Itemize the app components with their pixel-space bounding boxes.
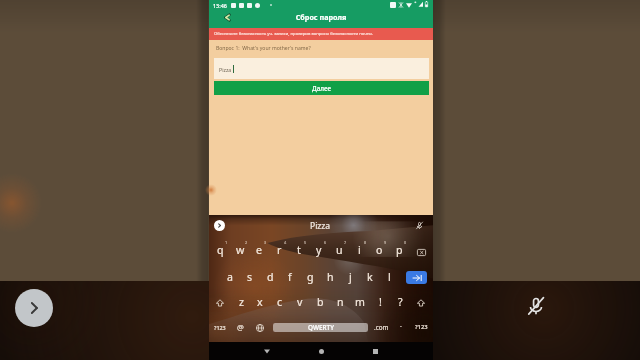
staticText: ? (398, 295, 403, 309)
staticText: 7 (344, 240, 347, 245)
staticText: j (349, 270, 352, 284)
button[interactable]: g (300, 264, 320, 289)
staticText: 3 (264, 240, 267, 245)
staticText: t (297, 243, 301, 257)
button[interactable]: ? (390, 289, 410, 314)
button[interactable]: m (350, 289, 370, 314)
staticText: y (316, 243, 322, 257)
staticText: v (297, 295, 303, 309)
button[interactable]: 5 (289, 237, 309, 262)
button[interactable]: Shift (209, 290, 230, 315)
button[interactable]: Expand suggestions (214, 220, 225, 231)
button[interactable]: a (220, 264, 240, 289)
staticText: 4 (284, 240, 287, 245)
staticText: 2 (245, 240, 248, 245)
staticText: n (337, 295, 344, 309)
button[interactable]: v (290, 289, 310, 314)
staticText: ?123 (214, 324, 226, 331)
button[interactable]: s (240, 264, 260, 289)
button[interactable]: 8 (349, 237, 369, 262)
staticText: u (336, 243, 343, 257)
staticText: Pizza (219, 66, 232, 73)
staticText: g (307, 270, 314, 284)
button[interactable]: z (231, 289, 251, 314)
button[interactable]: Caps lock (409, 290, 433, 315)
staticText: Вопрос 1: What's your mother's name? (216, 45, 311, 52)
staticText: · (400, 322, 402, 332)
staticText: QWERTY (308, 323, 334, 332)
button[interactable]: Recent apps (368, 344, 382, 358)
staticText: f (288, 270, 292, 284)
staticText: @ (237, 322, 244, 332)
button[interactable]: Backspace (408, 240, 434, 265)
button[interactable]: 2 (230, 237, 250, 262)
staticText: Обеспечьте безопасность уч. записи, пров… (214, 31, 373, 37)
button[interactable]: Pizza (296, 218, 344, 234)
button[interactable]: ?123 (210, 315, 230, 339)
button[interactable]: 3 (249, 237, 269, 262)
button[interactable]: Enter (406, 271, 427, 284)
staticText: m (355, 295, 365, 309)
button[interactable]: · (395, 315, 407, 339)
staticText: 8 (364, 240, 367, 245)
staticText: p (396, 243, 403, 257)
button[interactable]: ! (370, 289, 390, 314)
staticText: .com (374, 323, 389, 332)
staticText: k (367, 270, 373, 284)
staticText: c (277, 295, 283, 309)
button[interactable]: 1 (210, 237, 230, 262)
button[interactable]: 9 (369, 237, 389, 262)
staticText: 0 (404, 240, 407, 245)
staticText: w (236, 243, 245, 257)
staticText: d (267, 270, 274, 284)
button[interactable]: 6 (309, 237, 329, 262)
staticText: 13:46 (213, 2, 227, 9)
button[interactable]: Unmute (523, 293, 549, 319)
staticText: r (277, 243, 282, 257)
button[interactable]: .com (371, 315, 391, 339)
staticText: 5 (304, 240, 307, 245)
staticText: q (217, 243, 224, 257)
button[interactable]: 0 (389, 237, 409, 262)
button[interactable]: Next video (15, 289, 53, 327)
button[interactable]: Pizza (214, 58, 429, 79)
button[interactable]: @ (231, 315, 249, 339)
button[interactable]: j (340, 264, 360, 289)
staticText: Сброс пароля (209, 12, 433, 22)
button[interactable]: k (360, 264, 380, 289)
button[interactable]: n (330, 289, 350, 314)
button[interactable]: Back (260, 344, 274, 358)
button[interactable]: ?123 (411, 315, 431, 339)
staticText: e (256, 243, 262, 257)
button[interactable]: d (260, 264, 280, 289)
staticText: ! (379, 295, 382, 309)
button[interactable]: x (250, 289, 270, 314)
button[interactable]: Change language (251, 316, 269, 340)
staticText: 9 (384, 240, 387, 245)
button[interactable]: Далее (214, 81, 429, 95)
staticText: 1 (225, 240, 228, 245)
staticText: ?123 (415, 323, 428, 331)
staticText: x (257, 295, 263, 309)
button[interactable]: f (280, 264, 300, 289)
staticText: s (247, 270, 253, 284)
button[interactable]: 7 (329, 237, 349, 262)
button[interactable]: QWERTY (273, 323, 368, 332)
button[interactable]: 4 (269, 237, 289, 262)
staticText: Pizza (310, 220, 331, 232)
button[interactable]: Voice input muted (413, 219, 426, 232)
button[interactable]: c (270, 289, 290, 314)
staticText: a (227, 270, 233, 284)
staticText: o (376, 243, 383, 257)
staticText: z (239, 295, 244, 309)
button[interactable]: b (310, 289, 330, 314)
staticText: l (388, 270, 391, 284)
staticText: b (317, 295, 324, 309)
staticText: h (327, 270, 334, 284)
staticText: 6 (324, 240, 327, 245)
button[interactable]: Back (219, 9, 235, 26)
button[interactable]: h (320, 264, 340, 289)
staticText: i (358, 243, 361, 257)
button[interactable]: l (379, 264, 399, 289)
button[interactable]: Home (314, 344, 328, 358)
